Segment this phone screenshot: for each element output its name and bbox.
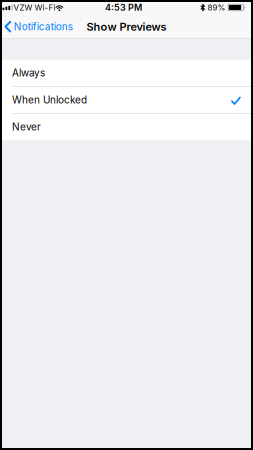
staticText: Never	[12, 121, 41, 133]
staticText: VZW Wi-Fi	[14, 3, 56, 12]
button[interactable]: Always	[2, 60, 251, 86]
button[interactable]: When Unlocked	[2, 87, 251, 113]
staticText: 4:53 PM	[105, 2, 142, 13]
staticText: 89%	[207, 3, 225, 12]
button[interactable]: Notifications	[2, 21, 73, 33]
staticText: Notifications	[14, 21, 73, 33]
button[interactable]: Never	[2, 114, 251, 140]
staticText: Always	[12, 67, 45, 79]
staticText: When Unlocked	[12, 94, 87, 106]
staticText: Show Previews	[86, 20, 166, 33]
